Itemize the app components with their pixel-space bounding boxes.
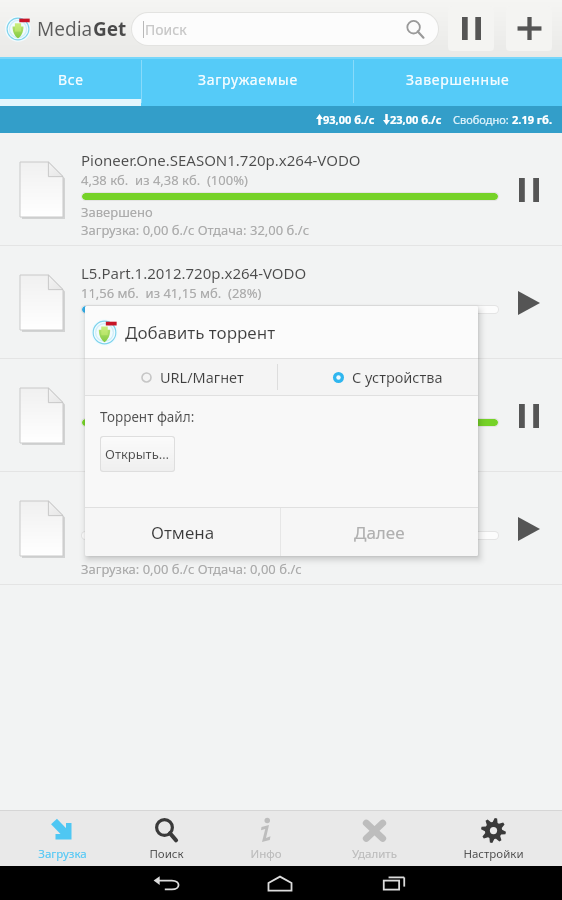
staticText: Отмена xyxy=(151,521,215,544)
button[interactable]: Загрузка: 0,00 б./с Отдача: 0,00 б./с xyxy=(0,472,562,585)
staticText: Торрент файл: xyxy=(100,408,195,426)
button[interactable]: С устройства xyxy=(333,361,443,393)
button[interactable]: L5.Part.1.2012.720p.x264-VODO xyxy=(0,246,562,359)
staticText: Добавить торрент xyxy=(125,321,276,344)
button[interactable]: Resume xyxy=(506,506,552,552)
staticText: Завершено xyxy=(81,203,153,221)
button[interactable]: Add torrent xyxy=(506,6,552,51)
staticText: Get xyxy=(93,16,127,42)
staticText: Pioneer.One.SEASON1.720p.x264-VODO xyxy=(81,150,361,170)
staticText: Загрузка: 0,00 б./с Отдача: 32,00 б./с xyxy=(81,221,310,239)
staticText: Все xyxy=(58,70,84,89)
staticText: Открыть… xyxy=(105,445,170,463)
button[interactable]: Поиск xyxy=(132,13,438,45)
button[interactable]: Инфо xyxy=(208,810,324,866)
staticText: Завершенные xyxy=(406,70,510,89)
staticText: Инфо xyxy=(250,846,282,862)
staticText: Поиск xyxy=(145,20,187,39)
button[interactable]: Pause xyxy=(0,359,562,472)
other: Recents xyxy=(378,873,410,893)
button[interactable]: Поиск xyxy=(124,810,208,866)
staticText: Media xyxy=(37,16,93,42)
staticText: Настройки xyxy=(463,846,524,862)
button[interactable]: Pause xyxy=(506,393,552,439)
staticText: Свободно: xyxy=(453,112,512,127)
button[interactable]: Завершенные xyxy=(354,57,562,106)
button[interactable]: Pause all xyxy=(448,6,494,51)
button[interactable]: Pioneer.One.SEASON1.720p.x264-VODO xyxy=(0,133,562,246)
button[interactable]: Удалить xyxy=(324,810,424,866)
staticText: 23,00 б./с xyxy=(390,112,442,127)
staticText: URL/Магнет xyxy=(160,367,244,387)
staticText: Далее xyxy=(354,521,405,544)
button[interactable]: Открыть… xyxy=(101,437,174,471)
staticText: Загружаемые xyxy=(198,70,298,89)
button[interactable]: Все xyxy=(0,57,141,106)
other: Back xyxy=(152,873,184,893)
button[interactable]: Настройки xyxy=(424,810,562,866)
button[interactable]: Загрузка xyxy=(0,810,124,866)
staticText: 4,38 кб. из 4,38 кб. (100%) xyxy=(81,171,248,189)
staticText: 2.19 гб. xyxy=(512,112,553,127)
staticText: С устройства xyxy=(352,367,443,387)
staticText: Загрузка: 0,00 б./с Отдача: 0,00 б./с xyxy=(81,560,302,578)
staticText: L5.Part.1.2012.720p.x264-VODO xyxy=(81,263,307,283)
button[interactable]: URL/Магнет xyxy=(141,361,244,393)
button[interactable]: Загружаемые xyxy=(142,57,353,106)
other: Home xyxy=(264,873,296,893)
staticText: 11,56 мб. из 41,15 мб. (28%) xyxy=(81,284,262,302)
button[interactable]: Pause xyxy=(506,167,552,213)
button[interactable]: Далее xyxy=(281,508,478,556)
button[interactable]: Resume xyxy=(506,280,552,326)
staticText: 93,00 б./с xyxy=(323,112,375,127)
button[interactable]: Отмена xyxy=(85,508,280,556)
staticText: Удалить xyxy=(352,846,397,862)
staticText: Поиск xyxy=(149,846,184,862)
staticText: Загрузка xyxy=(38,846,87,862)
